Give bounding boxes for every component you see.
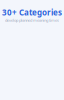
staticText: 30+ Categories [2,7,62,18]
staticText: develop planned meaning times [5,18,59,23]
